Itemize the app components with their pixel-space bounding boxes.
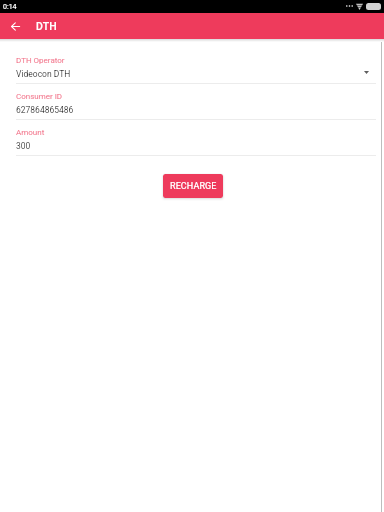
- staticText: DTH Operator: [16, 56, 65, 65]
- button[interactable]: Amount: [16, 129, 376, 165]
- staticText: DTH: [36, 20, 57, 32]
- button[interactable]: Consumer ID: [16, 93, 376, 129]
- staticText: Consumer ID: [16, 92, 63, 101]
- staticText: Videocon DTH: [16, 69, 71, 79]
- button[interactable]: DTH Operator: [16, 57, 376, 93]
- staticText: 0:14: [3, 3, 17, 11]
- staticText: RECHARGE: [170, 181, 217, 192]
- button[interactable]: RECHARGE: [163, 174, 223, 198]
- staticText: 300: [16, 141, 31, 151]
- staticText: 627864865486: [16, 105, 74, 115]
- staticText: Amount: [16, 128, 45, 137]
- button[interactable]: Back: [0, 13, 31, 39]
